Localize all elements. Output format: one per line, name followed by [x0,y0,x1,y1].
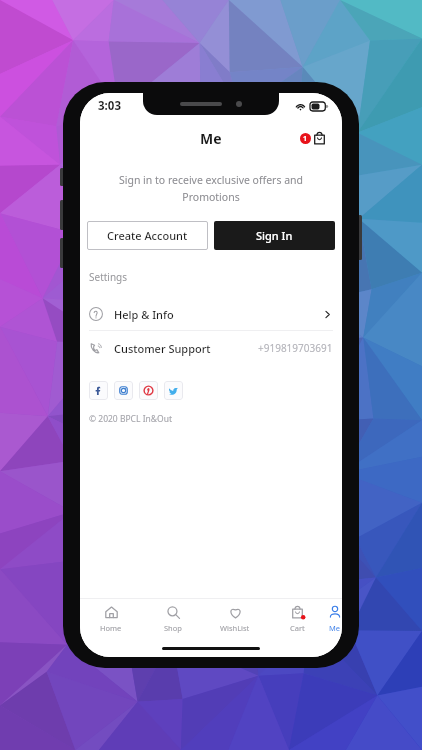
staticText: Home [100,623,122,633]
button[interactable]: Facebook [89,381,108,400]
button[interactable]: Twitter [164,381,183,400]
staticText: Settings [89,270,128,284]
staticText: Help & Info [114,307,174,322]
button[interactable]: Pinterest [139,381,158,400]
button[interactable]: Customer Support [80,331,342,365]
staticText: Cart [290,623,305,633]
button[interactable]: Help & Info [80,298,342,330]
staticText: Me [200,129,222,148]
button[interactable]: Cart [297,128,330,149]
button[interactable]: WishList [204,603,266,635]
staticText: 1 [303,134,308,144]
staticText: Customer Support [114,341,211,356]
button[interactable]: Sign In [214,221,335,250]
staticText: 3:03 [98,98,121,114]
button[interactable]: Cart [266,603,328,635]
staticText: © 2020 BPCL In&Out [89,413,172,425]
staticText: Sign In [256,228,293,243]
staticText: WishList [220,623,250,633]
staticText: +919819703691 [258,341,333,355]
button[interactable]: Home [80,603,142,635]
button[interactable]: Me [328,603,342,635]
button[interactable]: Shop [142,603,204,635]
button[interactable]: Create Account [87,221,208,250]
staticText: Shop [164,623,182,633]
staticText: Create Account [107,228,188,243]
staticText: Sign in to receive exclusive offers and … [106,173,316,204]
staticText: Me [329,623,341,633]
button[interactable]: Instagram [114,381,133,400]
